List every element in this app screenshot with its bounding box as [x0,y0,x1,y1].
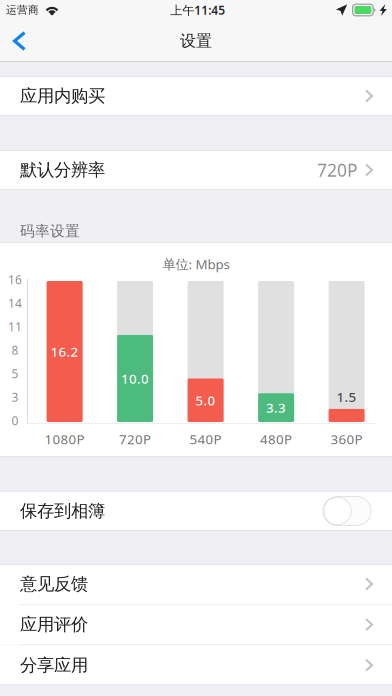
staticText: 上午11:45 [170,2,225,18]
staticText: 设置 [180,31,212,51]
staticText: 8 [11,342,18,358]
staticText: 0 [11,412,18,428]
staticText: 720P [317,158,357,181]
staticText: 5 [11,365,18,381]
staticText: 3 [11,389,18,405]
staticText: 3.3 [266,399,286,416]
staticText: 5.0 [196,391,216,409]
staticText: 应用内购买 [20,85,105,107]
staticText: 16 [8,271,22,287]
button[interactable]: 返回 [0,20,54,62]
staticText: 16.2 [51,343,79,360]
button[interactable]: 意见反馈 [0,564,392,604]
staticText: 1080P [45,430,85,448]
staticText: 单位: Mbps [162,255,229,273]
staticText: 720P [119,430,151,448]
staticText: 1.5 [337,388,357,406]
staticText: 480P [260,430,292,448]
button[interactable]: 应用内购买 [0,76,392,116]
staticText: 11 [8,318,22,334]
staticText: 14 [8,295,22,311]
staticText: 10.0 [121,370,149,387]
staticText: 意见反馈 [20,573,88,595]
staticText: 保存到相簿 [20,500,105,522]
staticText: 分享应用 [20,655,88,676]
staticText: 默认分辨率 [20,159,105,181]
staticText: 540P [190,430,222,448]
button[interactable]: 保存到相簿 [0,491,392,531]
button[interactable]: 默认分辨率 [0,150,392,190]
button[interactable]: 分享应用 [0,645,392,685]
button[interactable]: 应用评价 [0,605,392,645]
staticText: 运营商 [6,3,39,16]
staticText: 码率设置 [20,222,80,240]
staticText: 360P [331,430,363,448]
staticText: 应用评价 [20,614,88,635]
